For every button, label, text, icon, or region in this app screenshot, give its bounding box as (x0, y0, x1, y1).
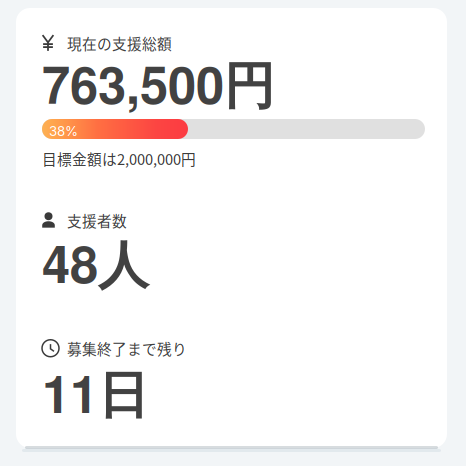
button[interactable]: 現在の支援総額 (16, 8, 447, 448)
staticText: 763,500円 (42, 47, 275, 119)
staticText: 支援者数 (67, 210, 127, 231)
staticText: 現在の支援総額 (67, 32, 172, 54)
staticText: 38% (49, 123, 78, 139)
staticText: 目標金額は2,000,000円 (42, 148, 196, 169)
staticText: 募集終了まで残り (67, 338, 187, 359)
staticText: 11日 (42, 356, 149, 429)
staticText: 48人 (42, 226, 149, 299)
